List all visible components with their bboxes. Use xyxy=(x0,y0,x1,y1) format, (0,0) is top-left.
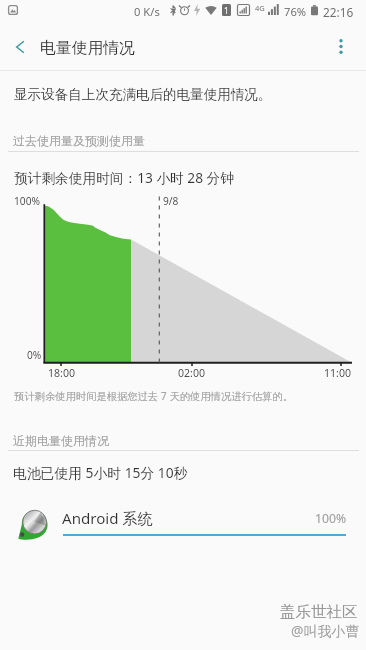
staticText: 电池已使用 5小时 15分 10秒 xyxy=(13,463,188,482)
staticText: 22:16 xyxy=(323,4,354,20)
staticText: 0% xyxy=(27,348,42,362)
staticText: Android 系统 xyxy=(62,508,153,529)
staticText: 76% xyxy=(284,4,307,19)
staticText: 11:00 xyxy=(324,366,352,380)
staticText: 100% xyxy=(14,194,40,208)
staticText: 9/8 xyxy=(163,194,179,208)
staticText: 预计剩余使用时间是根据您过去 7 天的使用情况进行估算的。 xyxy=(14,389,293,403)
staticText: 100% xyxy=(315,510,347,527)
staticText: 18:00 xyxy=(48,366,76,380)
staticText: 0 K/s xyxy=(134,4,160,19)
button[interactable]: Back xyxy=(4,26,36,68)
staticText: 02:00 xyxy=(178,366,206,380)
staticText: 预计剩余使用时间：13 小时 28 分钟 xyxy=(14,168,234,187)
button[interactable]: Android 系统 xyxy=(0,500,366,548)
staticText: @叫我小曹 xyxy=(291,621,360,640)
staticText: 电量使用情况 xyxy=(40,38,135,58)
staticText: 近期电量使用情况 xyxy=(13,433,109,448)
staticText: 过去使用量及预测使用量 xyxy=(13,133,145,148)
button[interactable]: More options xyxy=(321,25,361,67)
staticText: 4G xyxy=(255,3,265,13)
staticText: 1 xyxy=(224,5,229,16)
staticText: 盖乐世社区 xyxy=(280,602,358,622)
staticText: 显示设备自上次充满电后的电量使用情况。 xyxy=(14,86,272,103)
